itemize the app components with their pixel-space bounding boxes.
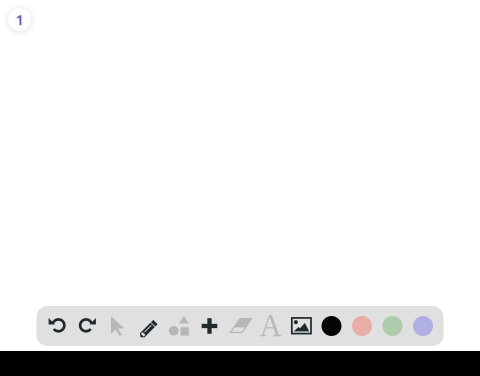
button[interactable]: Undo [45,309,69,343]
button[interactable]: Pink [350,309,374,343]
button[interactable]: Select [106,309,130,343]
button[interactable]: Green [380,309,404,343]
staticText: 1 [15,10,23,29]
button[interactable]: Purple [411,309,435,343]
button[interactable]: Page 1 [8,8,31,31]
button[interactable]: Text [258,309,282,343]
button[interactable]: Draw [136,309,160,343]
button[interactable]: Shapes [167,309,191,343]
button[interactable]: Erase [228,309,252,343]
button[interactable]: Insert image [289,309,313,343]
button[interactable]: Redo [75,309,99,343]
button[interactable]: Black [319,309,343,343]
button[interactable]: Add [197,309,221,343]
staticText: A [259,309,281,343]
